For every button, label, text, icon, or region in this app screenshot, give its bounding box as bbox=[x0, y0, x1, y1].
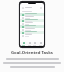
button[interactable]: Profile bbox=[38, 42, 43, 46]
button[interactable] bbox=[22, 16, 42, 19]
button[interactable] bbox=[22, 31, 42, 34]
button[interactable] bbox=[22, 34, 42, 37]
button[interactable]: Stats bbox=[32, 42, 37, 46]
staticText: Goal-Oriented Tasks bbox=[3, 50, 61, 56]
button[interactable] bbox=[22, 22, 42, 25]
button[interactable]: Home bbox=[21, 42, 26, 46]
button[interactable] bbox=[22, 28, 42, 31]
button[interactable] bbox=[22, 13, 42, 16]
button[interactable] bbox=[22, 19, 42, 22]
button[interactable] bbox=[22, 25, 42, 28]
button[interactable]: Tasks bbox=[27, 42, 32, 46]
